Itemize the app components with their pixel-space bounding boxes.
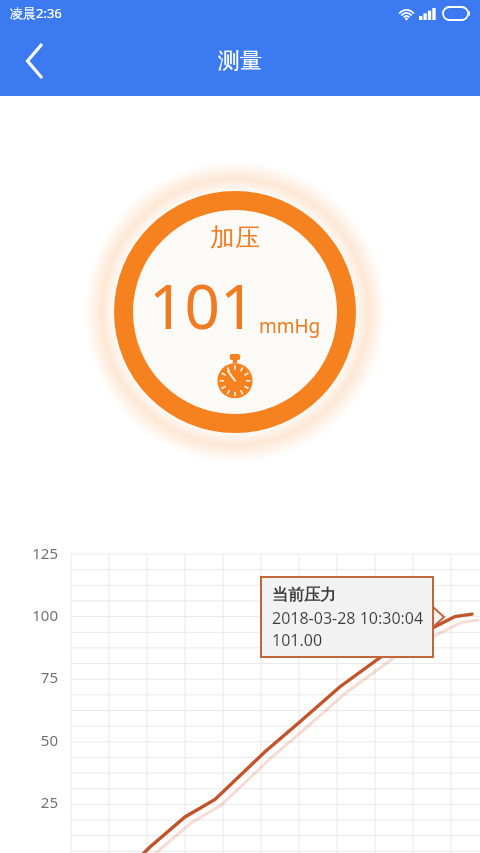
staticText: 加压 bbox=[210, 222, 260, 253]
button[interactable]: Back bbox=[8, 34, 62, 88]
staticText: 2018-03-28 10:30:04 bbox=[272, 607, 424, 629]
staticText: 25 bbox=[0, 792, 58, 812]
staticText: 测量 bbox=[218, 47, 262, 75]
staticText: 100 bbox=[0, 605, 58, 625]
staticText: 125 bbox=[0, 543, 58, 563]
staticText: 75 bbox=[0, 667, 58, 687]
button[interactable]: 加压 bbox=[85, 162, 385, 462]
staticText: mmHg bbox=[259, 313, 321, 339]
staticText: 101.00 bbox=[272, 629, 323, 651]
staticText: 50 bbox=[0, 730, 58, 750]
staticText: 101 bbox=[149, 263, 256, 347]
staticText: 凌晨2:36 bbox=[10, 4, 62, 22]
staticText: 当前压力 bbox=[272, 585, 336, 605]
